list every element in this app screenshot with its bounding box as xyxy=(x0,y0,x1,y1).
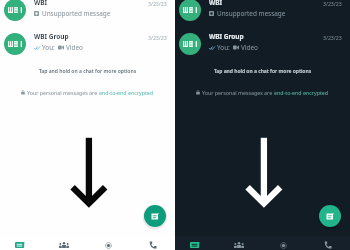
staticText: end-to-end encrypted xyxy=(274,89,329,96)
button[interactable]: New chat xyxy=(144,205,166,227)
staticText: WBI xyxy=(209,0,223,7)
button[interactable]: WBI Group xyxy=(175,29,350,58)
staticText: end-to-end encrypted xyxy=(99,89,154,96)
staticText: Tap and hold on a chat for more options xyxy=(175,68,350,75)
staticText: 3/23/23 xyxy=(148,34,167,41)
staticText: Your personal messages are xyxy=(27,89,99,96)
button[interactable]: Communities xyxy=(218,236,262,250)
staticText: WBI Group xyxy=(34,32,69,41)
button[interactable]: Calls xyxy=(306,236,350,250)
button[interactable]: New chat xyxy=(319,205,341,227)
staticText: Unsupported message xyxy=(42,9,111,18)
button[interactable]: Status xyxy=(87,236,131,250)
button[interactable]: WBI xyxy=(0,0,175,24)
staticText: Tap and hold on a chat for more options xyxy=(0,68,175,75)
button[interactable]: Chats xyxy=(0,236,43,250)
button[interactable]: Calls xyxy=(131,236,175,250)
staticText: Your personal messages are xyxy=(202,89,274,96)
staticText: 3/23/23 xyxy=(323,0,342,7)
button[interactable]: Chats xyxy=(175,236,218,250)
staticText: 3/23/23 xyxy=(323,34,342,41)
staticText: You: xyxy=(217,43,230,52)
button[interactable]: Status xyxy=(262,236,306,250)
staticText: You: xyxy=(42,43,55,52)
staticText: 3/23/23 xyxy=(148,0,167,7)
staticText: Video xyxy=(241,43,258,52)
staticText: Video xyxy=(66,43,83,52)
button[interactable]: WBI Group xyxy=(0,29,175,58)
button[interactable]: Communities xyxy=(43,236,87,250)
staticText: WBI xyxy=(34,0,48,7)
button[interactable]: WBI xyxy=(175,0,350,24)
staticText: WBI Group xyxy=(209,32,244,41)
staticText: Unsupported message xyxy=(217,9,286,18)
